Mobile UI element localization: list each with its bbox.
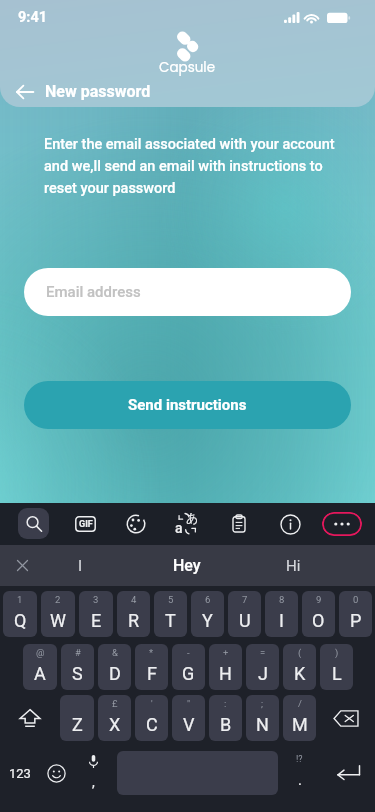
button[interactable]: ; bbox=[246, 695, 279, 741]
staticText: 6 bbox=[205, 594, 211, 605]
staticText: N bbox=[256, 714, 269, 735]
staticText: O bbox=[312, 610, 325, 631]
button[interactable]: = bbox=[246, 644, 279, 690]
staticText: - bbox=[187, 647, 190, 658]
staticText: @ bbox=[36, 647, 45, 658]
staticText: £ bbox=[112, 698, 118, 709]
button[interactable]: Voice input bbox=[76, 749, 110, 797]
button[interactable]: Hi bbox=[257, 545, 329, 586]
button[interactable]: Hey bbox=[139, 545, 235, 586]
button[interactable]: Z bbox=[60, 695, 94, 741]
staticText: E bbox=[91, 610, 102, 631]
staticText: ; bbox=[261, 698, 264, 709]
button[interactable]: 6 bbox=[191, 591, 224, 637]
button[interactable]: 3 bbox=[79, 591, 113, 637]
staticText: Hi bbox=[286, 557, 301, 575]
button[interactable]: + bbox=[209, 644, 242, 690]
staticText: B bbox=[220, 714, 232, 735]
staticText: ( bbox=[298, 647, 302, 658]
staticText: D bbox=[109, 663, 121, 684]
staticText: V bbox=[183, 714, 195, 735]
staticText: Capsule bbox=[159, 58, 216, 77]
staticText: 3 bbox=[93, 594, 99, 605]
button[interactable]: 5 bbox=[154, 591, 187, 637]
button[interactable]: GIF bbox=[69, 508, 101, 540]
button[interactable]: - bbox=[172, 644, 205, 690]
button[interactable]: Close suggestions bbox=[4, 545, 40, 586]
button[interactable]: clipboard bbox=[223, 508, 255, 540]
button[interactable]: info bbox=[274, 508, 306, 540]
button[interactable]: 9 bbox=[302, 591, 335, 637]
button[interactable]: " bbox=[172, 695, 205, 741]
button[interactable]: Shift bbox=[1, 695, 58, 741]
staticText: . bbox=[298, 771, 302, 789]
staticText: X bbox=[109, 714, 121, 735]
button[interactable]: ) bbox=[320, 644, 353, 690]
staticText: = bbox=[260, 647, 266, 658]
staticText: ) bbox=[335, 647, 339, 658]
button[interactable]: @ bbox=[23, 644, 57, 690]
staticText: Q bbox=[14, 610, 27, 631]
button[interactable]: 1 bbox=[3, 591, 37, 637]
button[interactable]: Backspace bbox=[318, 695, 374, 741]
button[interactable]: 0 bbox=[339, 591, 372, 637]
button[interactable]: I bbox=[44, 545, 116, 586]
button[interactable]: Send instructions bbox=[24, 381, 351, 429]
staticText: W bbox=[50, 610, 66, 631]
staticText: あ bbox=[186, 510, 199, 525]
button[interactable]: ' bbox=[135, 695, 168, 741]
staticText: 0 bbox=[353, 594, 359, 605]
staticText: # bbox=[75, 647, 81, 658]
staticText: 1 bbox=[17, 594, 23, 605]
staticText: Email address bbox=[46, 283, 141, 301]
staticText: 9:41 bbox=[18, 9, 48, 26]
staticText: 123 bbox=[9, 766, 31, 781]
button[interactable]: Back bbox=[8, 75, 41, 107]
button[interactable]: translate bbox=[171, 508, 203, 540]
staticText: R bbox=[128, 610, 140, 631]
button[interactable]: ( bbox=[283, 644, 316, 690]
button[interactable]: Search bbox=[18, 508, 49, 539]
button[interactable]: Enter bbox=[324, 749, 372, 797]
button[interactable]: 8 bbox=[265, 591, 298, 637]
button[interactable]: palette bbox=[120, 508, 152, 540]
staticText: U bbox=[239, 610, 251, 631]
staticText: 5 bbox=[168, 594, 174, 605]
button[interactable]: 7 bbox=[228, 591, 261, 637]
button[interactable]: / bbox=[283, 695, 316, 741]
staticText: Hey bbox=[173, 556, 201, 575]
button[interactable]: Emoji bbox=[39, 749, 73, 797]
staticText: T bbox=[165, 610, 176, 631]
staticText: GIF bbox=[79, 519, 93, 530]
staticText: & bbox=[112, 647, 118, 658]
staticText: 4 bbox=[131, 594, 137, 605]
staticText: Z bbox=[72, 714, 83, 735]
staticText: 2 bbox=[55, 594, 61, 605]
button[interactable]: : bbox=[209, 695, 242, 741]
button[interactable]: £ bbox=[98, 695, 131, 741]
staticText: P bbox=[350, 610, 362, 631]
button[interactable]: !? bbox=[283, 749, 316, 797]
staticText: + bbox=[223, 647, 229, 658]
staticText: M bbox=[292, 714, 308, 735]
staticText: !? bbox=[296, 754, 303, 765]
button[interactable]: Email address bbox=[24, 268, 351, 316]
staticText: : bbox=[224, 698, 227, 709]
staticText: H bbox=[219, 663, 232, 684]
staticText: / bbox=[298, 698, 302, 709]
staticText: J bbox=[258, 663, 268, 684]
staticText: C bbox=[146, 714, 158, 735]
staticText: , bbox=[92, 774, 95, 790]
button[interactable]: 2 bbox=[41, 591, 75, 637]
staticText: I bbox=[279, 610, 284, 631]
staticText: Send instructions bbox=[128, 396, 247, 414]
button[interactable]: More options bbox=[322, 512, 362, 536]
button[interactable]: 123 bbox=[0, 749, 40, 797]
staticText: Y bbox=[202, 610, 213, 631]
staticText: F bbox=[147, 663, 157, 684]
button[interactable]: * bbox=[135, 644, 168, 690]
button[interactable]: & bbox=[98, 644, 131, 690]
button[interactable]: 4 bbox=[117, 591, 150, 637]
button[interactable]: # bbox=[61, 644, 94, 690]
